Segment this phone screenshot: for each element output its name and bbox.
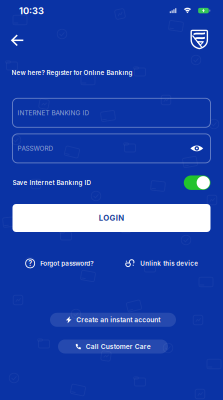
staticText: PASSWORD [17, 144, 53, 152]
button[interactable]: Unlink this device [124, 256, 199, 270]
button[interactable]: Call Customer Care [58, 339, 168, 353]
staticText: ? [28, 259, 32, 268]
button[interactable]: Back [5, 28, 30, 53]
button[interactable]: Show password [190, 145, 203, 152]
staticText: New here? Register for Online Banking [11, 69, 132, 76]
button[interactable]: New here? Register for Online Banking [10, 66, 133, 79]
staticText: Create an instant account [76, 316, 160, 324]
button[interactable]: Create an instant account [50, 313, 176, 327]
staticText: Unlink this device [140, 260, 198, 267]
button[interactable]: LOGIN [12, 204, 210, 232]
staticText: INTERNET BANKING ID [17, 109, 89, 117]
staticText: 10:33 [19, 5, 44, 16]
staticText: Call Customer Care [86, 342, 151, 351]
button[interactable]: ? [25, 256, 94, 271]
staticText: LOGIN [99, 213, 124, 223]
button[interactable]: Save Internet Banking ID [184, 175, 210, 190]
button[interactable]: Standard Bank [186, 25, 212, 53]
staticText: Forgot password? [40, 260, 93, 267]
staticText: Save Internet Banking ID [12, 179, 91, 186]
